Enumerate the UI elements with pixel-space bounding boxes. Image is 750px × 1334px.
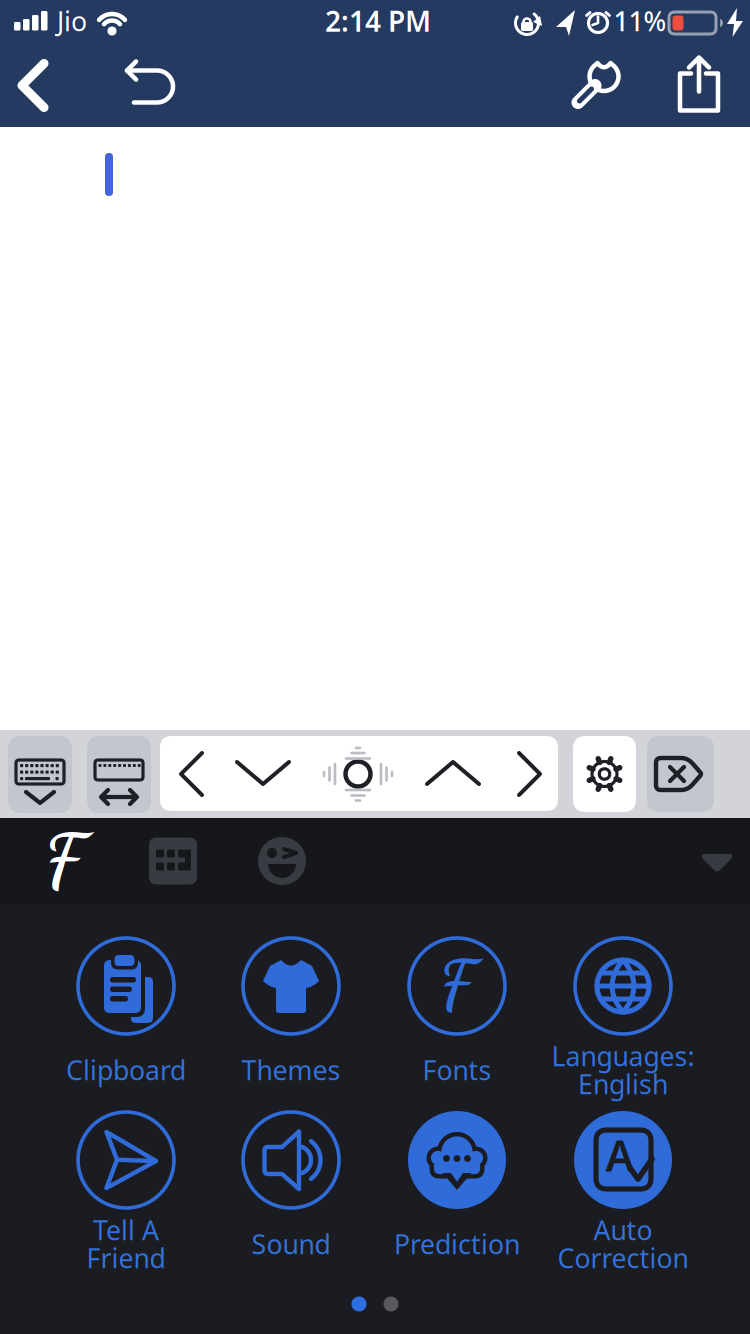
button[interactable]: Languages: xyxy=(540,937,706,1099)
staticText: F xyxy=(44,816,83,906)
staticText: Tell A xyxy=(93,1212,159,1248)
staticText: Friend xyxy=(86,1240,165,1276)
button[interactable]: Themes xyxy=(208,937,374,1099)
staticText: Prediction xyxy=(394,1226,520,1262)
button[interactable] xyxy=(423,736,483,811)
button[interactable] xyxy=(258,837,306,885)
staticText: Sound xyxy=(251,1226,330,1262)
button[interactable]: Sound xyxy=(208,1111,374,1273)
button[interactable]: F xyxy=(19,818,109,904)
button[interactable] xyxy=(321,736,395,811)
staticText: 2:14 PM xyxy=(325,2,431,40)
staticText: English xyxy=(578,1066,668,1102)
button[interactable]: Tell A xyxy=(43,1111,209,1273)
button[interactable] xyxy=(149,837,197,884)
button[interactable] xyxy=(678,56,720,112)
button[interactable] xyxy=(647,736,714,812)
button[interactable]: Prediction xyxy=(374,1111,540,1273)
staticText: Correction xyxy=(557,1240,688,1276)
staticText: Jio xyxy=(57,3,87,39)
button[interactable] xyxy=(569,52,625,110)
staticText: 11% xyxy=(613,3,666,39)
button[interactable] xyxy=(507,736,551,811)
staticText: Fonts xyxy=(422,1052,491,1088)
button[interactable] xyxy=(18,54,74,116)
button[interactable] xyxy=(573,736,636,812)
button[interactable]: F xyxy=(374,937,540,1099)
button[interactable] xyxy=(233,736,293,811)
staticText: Clipboard xyxy=(66,1052,186,1088)
button[interactable] xyxy=(87,736,151,813)
button[interactable] xyxy=(8,736,72,813)
button[interactable] xyxy=(701,850,733,874)
button[interactable] xyxy=(170,736,214,811)
staticText: Themes xyxy=(241,1052,340,1088)
button[interactable]: Clipboard xyxy=(43,937,209,1099)
staticText: Auto xyxy=(593,1212,652,1248)
staticText: F xyxy=(439,946,474,1026)
staticText: A xyxy=(605,1127,634,1183)
button[interactable]: A xyxy=(540,1111,706,1273)
staticText: Languages: xyxy=(551,1038,694,1074)
button[interactable] xyxy=(122,60,178,108)
